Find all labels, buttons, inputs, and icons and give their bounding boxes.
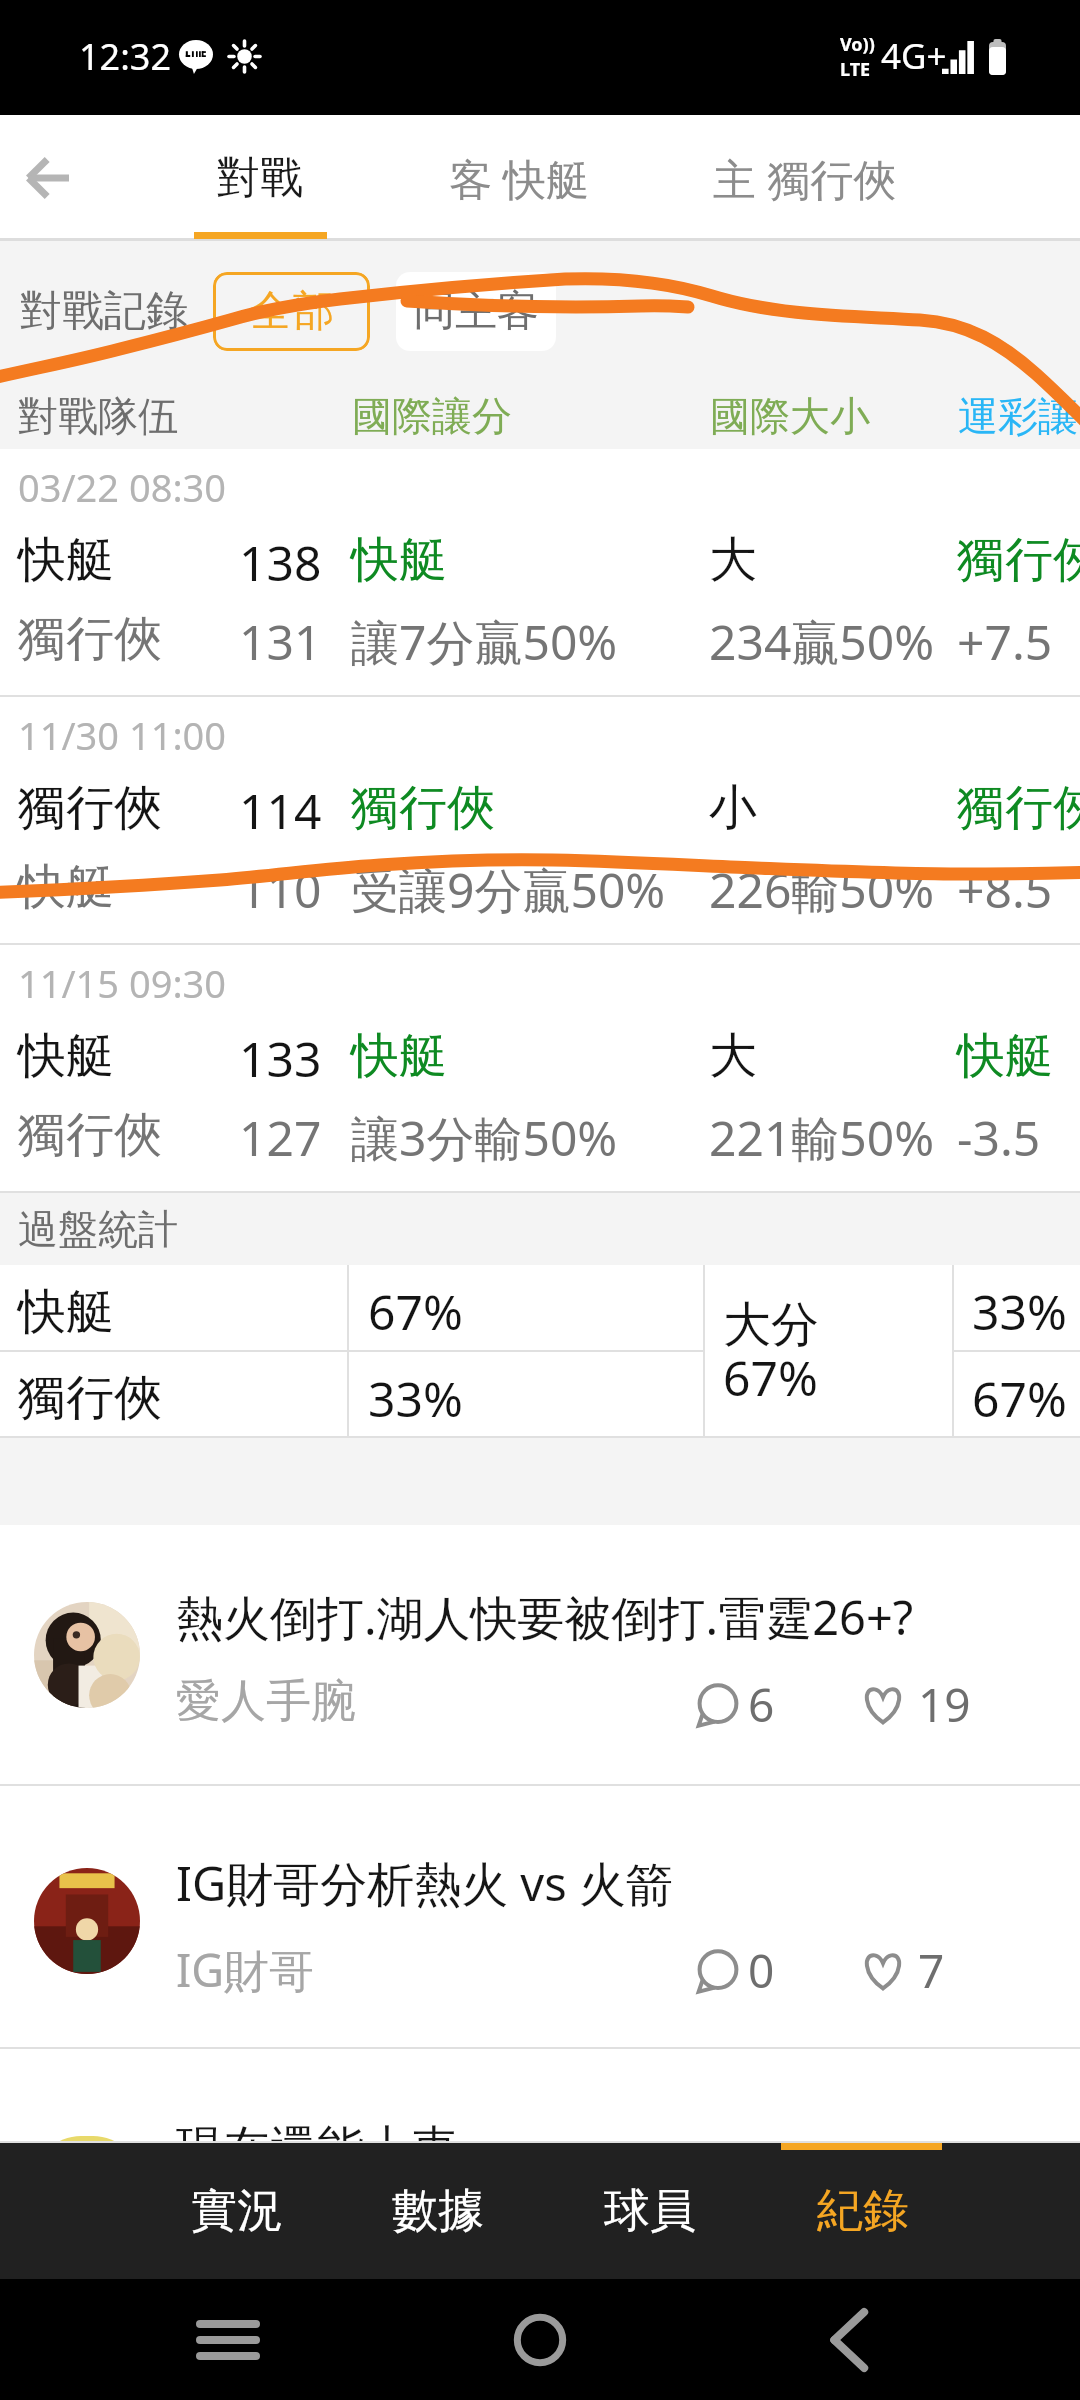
staticText: 大 <box>709 1026 757 1086</box>
staticText: 獨行俠 <box>351 778 495 838</box>
staticText: 67% <box>723 1345 818 1410</box>
staticText: 133 <box>239 1026 322 1091</box>
staticText: 67% <box>972 1366 1067 1431</box>
button[interactable]: 11/30 11:00 <box>0 697 1080 945</box>
staticText: 熱火倒打.湖人快要被倒打.雷霆26+? <box>176 1585 914 1649</box>
staticText: 運彩讓 <box>958 391 1078 441</box>
staticText: 12:32 <box>79 32 172 81</box>
staticText: IG財哥分析熱火 vs 火箭 <box>176 1851 673 1915</box>
staticText: 現在還能上車 <box>176 2119 458 2178</box>
staticText: 221輸50% <box>709 1105 935 1171</box>
staticText: +8.5 <box>957 857 1053 922</box>
button[interactable]: 現在還能上車 <box>0 2049 1080 2143</box>
button[interactable]: 實況 <box>137 2143 337 2279</box>
staticText: 愛人手腕 <box>176 1673 356 1730</box>
staticText: 67% <box>368 1279 463 1344</box>
button[interactable]: Back <box>0 115 112 241</box>
button[interactable]: 主 獨行俠 <box>670 115 940 241</box>
staticText: 過盤統計 <box>18 1204 178 1254</box>
button[interactable]: 11/15 09:30 <box>0 945 1080 1193</box>
staticText: 快艇 <box>18 857 114 917</box>
staticText: 11/15 09:30 <box>18 957 227 1009</box>
staticText: 獨行俠 <box>957 530 1080 590</box>
staticText: 紀錄 <box>817 2182 909 2240</box>
staticText: 138 <box>239 530 322 595</box>
staticText: 客 快艇 <box>449 149 590 208</box>
staticText: 0 <box>748 1939 775 2002</box>
staticText: 獨行俠 <box>18 609 162 669</box>
staticText: 131 <box>239 609 322 674</box>
staticText: 114 <box>239 778 322 843</box>
staticText: 受讓9分贏50% <box>351 857 666 923</box>
staticText: IG財哥 <box>176 1939 315 2000</box>
staticText: 03/22 08:30 <box>18 461 227 513</box>
staticText: 快艇 <box>351 530 447 590</box>
button[interactable]: 數據 <box>338 2143 538 2279</box>
button[interactable]: 客 快艇 <box>384 115 654 241</box>
staticText: 234贏50% <box>709 609 935 675</box>
staticText: 33% <box>368 1366 463 1431</box>
staticText: 對戰 <box>217 151 303 205</box>
staticText: 主 獨行俠 <box>713 149 897 208</box>
button[interactable]: Comments <box>698 1673 775 1736</box>
staticText: 127 <box>239 1105 322 1170</box>
button[interactable]: 紀錄 <box>763 2143 963 2279</box>
staticText: 獨行俠 <box>957 778 1080 838</box>
staticText: 大 <box>709 530 757 590</box>
staticText: 226輸50% <box>709 857 935 923</box>
button[interactable]: Likes <box>860 1939 945 2002</box>
staticText: 讓7分贏50% <box>351 609 618 675</box>
button[interactable]: 同主客 <box>396 272 556 351</box>
button[interactable]: Back <box>768 2279 928 2400</box>
staticText: 7 <box>918 1939 945 2002</box>
button[interactable]: 03/22 08:30 <box>0 449 1080 697</box>
staticText: 讓3分輸50% <box>351 1105 618 1171</box>
button[interactable]: IG財哥分析熱火 vs 火箭 <box>0 1786 1080 2049</box>
staticText: 國際大小 <box>710 391 870 441</box>
staticText: 數據 <box>392 2182 484 2240</box>
button[interactable]: Comments <box>698 1939 775 2002</box>
staticText: 大分 <box>723 1295 819 1355</box>
button[interactable]: Home <box>460 2279 620 2400</box>
button[interactable]: 球員 <box>550 2143 750 2279</box>
staticText: LTE <box>840 57 871 82</box>
button[interactable]: 對戰 <box>125 115 395 241</box>
staticText: Vo)) <box>840 32 875 57</box>
staticText: 110 <box>239 857 322 922</box>
staticText: 快艇 <box>18 1026 114 1086</box>
staticText: 4G+ <box>881 32 947 80</box>
staticText: 小 <box>709 778 757 838</box>
staticText: 獨行俠 <box>18 778 162 838</box>
staticText: 33% <box>972 1279 1067 1344</box>
staticText: 19 <box>918 1673 971 1736</box>
staticText: +7.5 <box>957 609 1053 674</box>
staticText: 同主客 <box>413 285 539 338</box>
button[interactable]: 熱火倒打.湖人快要被倒打.雷霆26+? <box>0 1525 1080 1786</box>
staticText: 球員 <box>604 2182 696 2240</box>
staticText: 快艇 <box>18 1282 114 1342</box>
staticText: 對戰隊伍 <box>18 391 178 441</box>
staticText: 獨行俠 <box>18 1105 162 1165</box>
staticText: 國際讓分 <box>352 391 512 441</box>
button[interactable]: Recent apps <box>148 2279 308 2400</box>
staticText: 快艇 <box>957 1026 1053 1086</box>
staticText: -3.5 <box>957 1105 1041 1170</box>
staticText: 對戰記錄 <box>20 285 188 338</box>
button[interactable]: Likes <box>860 1673 971 1736</box>
staticText: 獨行俠 <box>18 1368 162 1428</box>
staticText: 6 <box>748 1673 775 1736</box>
staticText: 全部 <box>250 285 334 338</box>
staticText: 快艇 <box>351 1026 447 1086</box>
button[interactable]: 全部 <box>213 272 370 351</box>
staticText: 快艇 <box>18 530 114 590</box>
staticText: 11/30 11:00 <box>18 709 227 761</box>
staticText: 實況 <box>191 2182 283 2240</box>
